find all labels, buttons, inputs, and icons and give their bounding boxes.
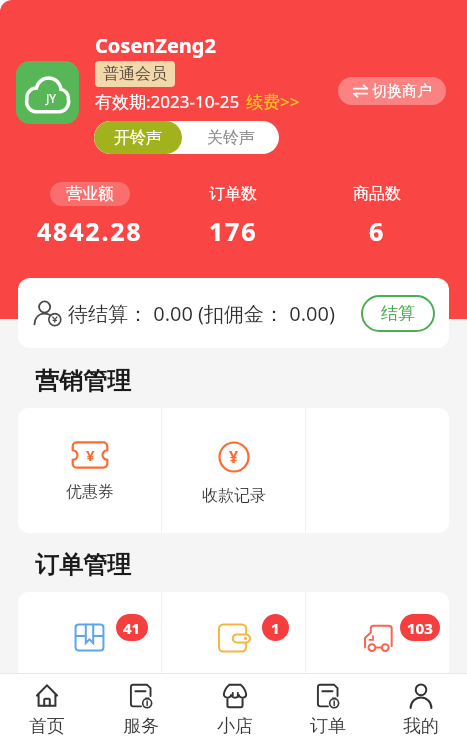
button[interactable]: 服务 [94, 674, 188, 752]
button[interactable]: 续费>> [246, 90, 300, 113]
staticText: 订单 [310, 715, 346, 738]
button[interactable]: ¥ [18, 408, 161, 533]
staticText: 优惠券 [66, 482, 114, 502]
button[interactable]: 开铃声 [94, 121, 182, 154]
staticText: 订单数 [209, 184, 257, 204]
staticText: 41 [123, 618, 141, 638]
staticText: 结算 [381, 303, 415, 324]
staticText: 6 [369, 214, 386, 248]
button[interactable]: 我的 [374, 674, 467, 752]
button[interactable]: 切换商户 [338, 77, 446, 105]
staticText: 营销管理 [35, 366, 131, 396]
staticText: 我的 [403, 715, 439, 738]
staticText: 开铃声 [114, 128, 162, 148]
staticText: 关铃声 [207, 128, 255, 148]
staticText: ¥ [86, 445, 95, 465]
staticText: 营业额 [66, 184, 114, 204]
staticText: 首页 [29, 715, 65, 738]
staticText: JY [46, 90, 57, 106]
button[interactable]: 41 [18, 592, 161, 712]
staticText: 1 [271, 618, 280, 638]
button[interactable]: 订单 [281, 674, 374, 752]
button[interactable]: 1 [162, 592, 305, 712]
button[interactable]: 关铃声 [182, 121, 279, 154]
staticText: 待结算： 0.00 (扣佣金： 0.00) [68, 300, 335, 327]
staticText: 收款记录 [202, 486, 266, 506]
staticText: ¥ [229, 446, 239, 468]
staticText: 切换商户 [372, 82, 432, 101]
staticText: 订单管理 [35, 550, 131, 580]
staticText: 服务 [123, 715, 159, 738]
staticText: CosenZeng2 [95, 32, 216, 59]
button[interactable]: 103 [306, 592, 449, 712]
staticText: 103 [407, 618, 433, 638]
button[interactable]: 结算 [361, 295, 435, 332]
button[interactable]: 小店 [188, 674, 281, 752]
staticText: 176 [209, 214, 258, 248]
button[interactable]: ¥ [162, 408, 305, 533]
button[interactable]: JY [16, 61, 79, 124]
staticText: 商品数 [353, 184, 401, 204]
staticText: 小店 [217, 715, 253, 738]
staticText: 普通会员 [103, 64, 167, 84]
staticText: 有效期:2023-10-25 [95, 90, 240, 113]
button[interactable]: 首页 [0, 674, 94, 752]
staticText: 4842.28 [37, 214, 143, 248]
